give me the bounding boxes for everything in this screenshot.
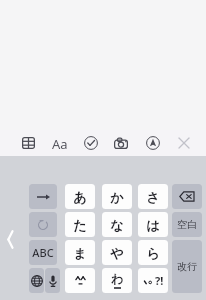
staticText: か bbox=[110, 189, 124, 205]
button[interactable]: ABC bbox=[29, 240, 57, 265]
staticText: 空白 bbox=[177, 218, 197, 231]
button[interactable]: か bbox=[102, 184, 132, 209]
button[interactable]: ま bbox=[65, 240, 95, 265]
staticText: ま bbox=[73, 245, 87, 261]
button[interactable]: な bbox=[102, 212, 132, 237]
staticText: や bbox=[110, 245, 124, 261]
staticText: あ bbox=[73, 189, 87, 205]
button[interactable]: Undo bbox=[29, 212, 57, 237]
button[interactable]: Voice input bbox=[45, 268, 60, 293]
button[interactable]: は bbox=[138, 212, 168, 237]
button[interactable]: Close bbox=[173, 132, 195, 154]
button[interactable]: 改行 bbox=[172, 240, 202, 293]
staticText: 改行 bbox=[177, 260, 197, 273]
staticText: ABC bbox=[32, 245, 54, 260]
button[interactable]: さ bbox=[138, 184, 168, 209]
button[interactable] bbox=[29, 184, 57, 209]
button[interactable]: Mark complete bbox=[80, 132, 102, 154]
button[interactable] bbox=[65, 268, 95, 293]
staticText: は bbox=[146, 217, 160, 233]
staticText: ?! bbox=[155, 273, 164, 288]
staticText: Aa bbox=[52, 135, 68, 153]
staticText: た bbox=[73, 217, 87, 233]
button[interactable]: Table bbox=[17, 132, 39, 154]
button[interactable]: ら bbox=[138, 240, 168, 265]
button[interactable]: Camera bbox=[110, 132, 132, 154]
button[interactable]: わ bbox=[102, 268, 132, 293]
button[interactable]: Switch keyboard bbox=[29, 268, 44, 293]
button[interactable]: や bbox=[102, 240, 132, 265]
staticText: さ bbox=[146, 189, 160, 205]
staticText: わ bbox=[111, 271, 124, 286]
button[interactable]: あ bbox=[65, 184, 95, 209]
button[interactable]: Delete bbox=[172, 184, 202, 209]
button[interactable]: Draw bbox=[142, 132, 164, 154]
button[interactable]: Previous bbox=[1, 228, 19, 251]
button[interactable]: Text format bbox=[49, 135, 71, 153]
staticText: ら bbox=[146, 245, 160, 261]
button[interactable]: ?! bbox=[138, 268, 168, 293]
button[interactable]: た bbox=[65, 212, 95, 237]
button[interactable]: 空白 bbox=[172, 212, 202, 237]
staticText: な bbox=[110, 217, 124, 233]
